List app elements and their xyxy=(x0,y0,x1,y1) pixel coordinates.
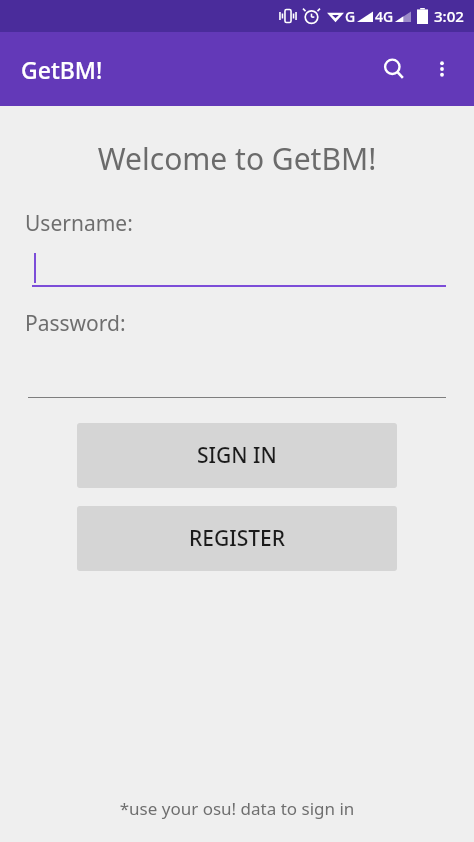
staticText: REGISTER xyxy=(189,524,285,553)
staticText: Username: xyxy=(25,209,133,238)
button[interactable] xyxy=(32,251,446,287)
staticText: 4G xyxy=(375,7,394,26)
button[interactable]: REGISTER xyxy=(77,506,397,571)
staticText: *use your osu! data to sign in xyxy=(0,797,474,820)
button[interactable]: More options xyxy=(418,45,466,93)
staticText: SIGN IN xyxy=(197,441,277,470)
staticText: GetBM! xyxy=(21,54,103,85)
staticText: G xyxy=(345,7,356,26)
button[interactable]: Search xyxy=(370,45,418,93)
staticText: 3:02 xyxy=(434,6,464,26)
staticText: Welcome to GetBM! xyxy=(0,138,474,179)
staticText: Password: xyxy=(25,309,126,338)
button[interactable] xyxy=(28,362,446,398)
button[interactable]: SIGN IN xyxy=(77,423,397,488)
